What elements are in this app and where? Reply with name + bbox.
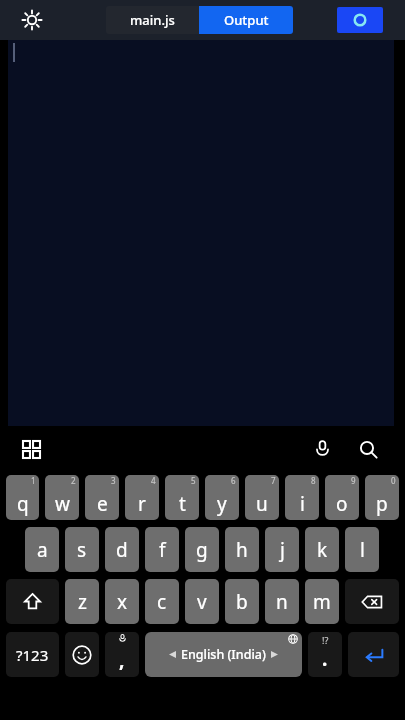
staticText: b bbox=[236, 589, 248, 615]
staticText: k bbox=[317, 537, 328, 563]
button[interactable]: v bbox=[185, 579, 219, 624]
button[interactable]: m bbox=[305, 579, 339, 624]
staticText: n bbox=[276, 589, 288, 615]
staticText: i bbox=[300, 491, 305, 517]
staticText: q bbox=[17, 491, 29, 517]
button[interactable]: 4 bbox=[125, 475, 159, 520]
button[interactable]: 0 bbox=[365, 475, 399, 520]
button[interactable]: a bbox=[25, 527, 59, 572]
button[interactable]: Shift bbox=[6, 579, 59, 624]
button[interactable]: b bbox=[225, 579, 259, 624]
staticText: c bbox=[157, 589, 167, 615]
staticText: . bbox=[322, 646, 328, 672]
staticText: English (India) bbox=[181, 646, 266, 663]
staticText: f bbox=[159, 537, 166, 563]
button[interactable]: j bbox=[265, 527, 299, 572]
staticText: 2 bbox=[71, 475, 76, 486]
button[interactable]: 3 bbox=[85, 475, 119, 520]
staticText: s bbox=[77, 537, 87, 563]
staticText: 8 bbox=[311, 475, 316, 486]
staticText: 0 bbox=[391, 475, 396, 486]
staticText: r bbox=[138, 491, 146, 517]
staticText: o bbox=[336, 491, 348, 517]
button[interactable]: ?123 bbox=[6, 632, 59, 677]
button[interactable]: 5 bbox=[165, 475, 199, 520]
button[interactable]: 1 bbox=[6, 475, 39, 520]
button[interactable]: Period bbox=[308, 632, 342, 677]
button[interactable]: s bbox=[65, 527, 99, 572]
staticText: x bbox=[117, 589, 128, 615]
staticText: main.js bbox=[130, 11, 175, 29]
button[interactable]: n bbox=[265, 579, 299, 624]
staticText: 5 bbox=[191, 475, 196, 486]
staticText: u bbox=[256, 491, 268, 517]
staticText: h bbox=[236, 537, 248, 563]
button[interactable]: z bbox=[65, 579, 99, 624]
button[interactable]: main.js bbox=[106, 6, 199, 34]
staticText: 6 bbox=[231, 475, 236, 486]
button[interactable]: Enter bbox=[348, 632, 399, 677]
staticText: Output bbox=[224, 11, 269, 29]
staticText: l bbox=[360, 537, 365, 563]
button[interactable]: d bbox=[105, 527, 139, 572]
staticText: e bbox=[97, 491, 108, 517]
button[interactable]: 7 bbox=[245, 475, 279, 520]
staticText: j bbox=[280, 537, 285, 563]
button[interactable]: x bbox=[105, 579, 139, 624]
button[interactable]: Output bbox=[199, 6, 293, 34]
staticText: 3 bbox=[111, 475, 116, 486]
staticText: 4 bbox=[151, 475, 156, 486]
staticText: 1 bbox=[31, 475, 36, 486]
button[interactable]: Search bbox=[351, 432, 385, 466]
staticText: g bbox=[196, 537, 208, 563]
button[interactable]: 6 bbox=[205, 475, 239, 520]
staticText: w bbox=[55, 491, 70, 517]
staticText: d bbox=[116, 537, 128, 563]
staticText: a bbox=[37, 537, 48, 563]
button[interactable]: g bbox=[185, 527, 219, 572]
staticText: t bbox=[179, 491, 186, 517]
button[interactable]: Run bbox=[337, 7, 383, 33]
button[interactable]: Voice input bbox=[305, 432, 339, 466]
button[interactable]: 9 bbox=[325, 475, 359, 520]
staticText: y bbox=[217, 491, 227, 517]
button[interactable]: Emoji bbox=[65, 632, 99, 677]
staticText: !? bbox=[322, 634, 329, 646]
staticText: ?123 bbox=[16, 645, 49, 665]
button[interactable]: Toggle theme bbox=[17, 5, 47, 35]
staticText: z bbox=[78, 589, 87, 615]
button[interactable]: Backspace bbox=[345, 579, 399, 624]
button[interactable]: 8 bbox=[285, 475, 319, 520]
staticText: 9 bbox=[351, 475, 356, 486]
staticText: v bbox=[197, 589, 207, 615]
button[interactable]: l bbox=[345, 527, 379, 572]
button[interactable]: h bbox=[225, 527, 259, 572]
staticText: 7 bbox=[271, 475, 276, 486]
button[interactable]: c bbox=[145, 579, 179, 624]
staticText: m bbox=[313, 589, 331, 615]
button[interactable]: 2 bbox=[45, 475, 79, 520]
staticText: , bbox=[119, 647, 125, 673]
staticText: p bbox=[376, 491, 388, 517]
button[interactable]: k bbox=[305, 527, 339, 572]
button[interactable]: Comma bbox=[105, 632, 139, 677]
button[interactable]: Space, English (India) bbox=[145, 632, 302, 677]
button[interactable]: Clipboard bbox=[15, 433, 47, 465]
button[interactable]: f bbox=[145, 527, 179, 572]
